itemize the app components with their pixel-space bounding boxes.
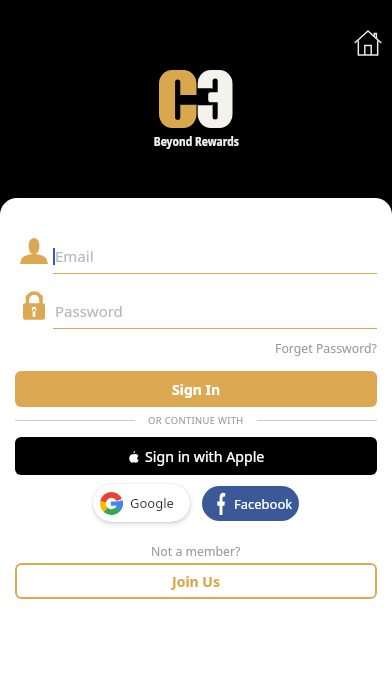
staticText: Sign in with Apple [145, 447, 265, 466]
staticText: OR CONTINUE WITH [148, 414, 244, 427]
staticText: Join Us [172, 572, 220, 591]
button[interactable]: Sign In [15, 371, 377, 407]
button[interactable]: Join Us [15, 563, 377, 599]
staticText: Facebook [234, 495, 293, 513]
button[interactable]: Password [0, 293, 392, 331]
staticText: Forget Password? [275, 340, 377, 357]
button[interactable]: Sign in with Apple [15, 437, 377, 475]
button[interactable]: Email [0, 238, 392, 276]
staticText: Password [55, 301, 123, 321]
staticText: Sign In [172, 380, 221, 399]
button[interactable]: Forget Password? [275, 340, 377, 357]
staticText: Google [130, 494, 174, 512]
button[interactable]: Home [349, 24, 387, 62]
staticText: Beyond Rewards [154, 134, 239, 150]
staticText: Not a member? [151, 543, 241, 560]
button[interactable]: Google [93, 484, 190, 522]
button[interactable]: Not a member? [149, 541, 243, 562]
staticText: Email [55, 246, 94, 266]
button[interactable]: Facebook [202, 486, 299, 521]
